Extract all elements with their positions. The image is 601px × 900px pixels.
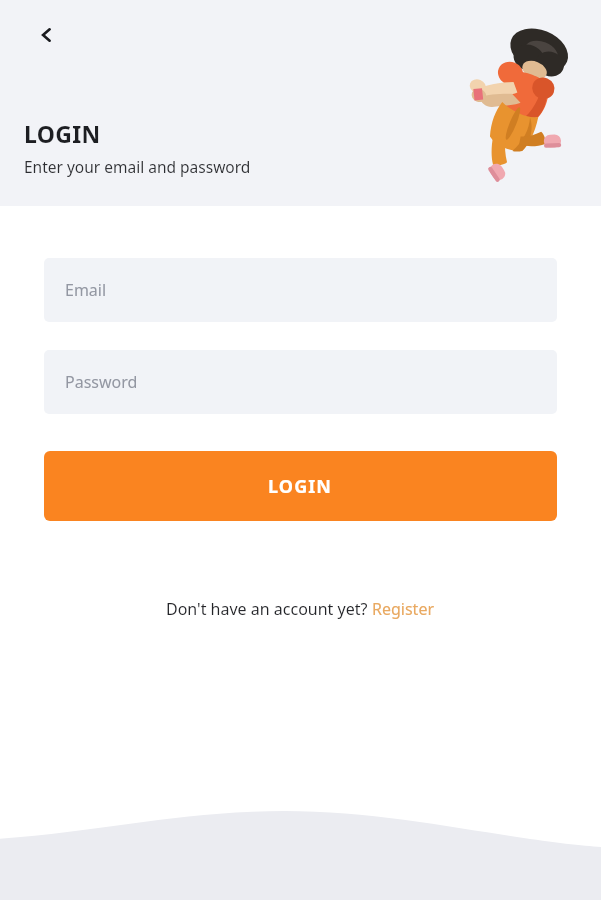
staticText: Email <box>65 279 107 301</box>
staticText: Password <box>65 371 138 393</box>
button[interactable]: Email <box>44 258 557 322</box>
button[interactable]: LOGIN <box>44 451 557 521</box>
button[interactable]: Register <box>372 598 435 620</box>
button[interactable]: Back <box>26 14 68 56</box>
staticText: Don't have an account yet? <box>166 598 372 620</box>
staticText: LOGIN <box>268 474 333 499</box>
staticText: Enter your email and password <box>24 156 251 177</box>
staticText: Register <box>372 598 435 620</box>
staticText: LOGIN <box>24 118 101 149</box>
button[interactable]: Password <box>44 350 557 414</box>
